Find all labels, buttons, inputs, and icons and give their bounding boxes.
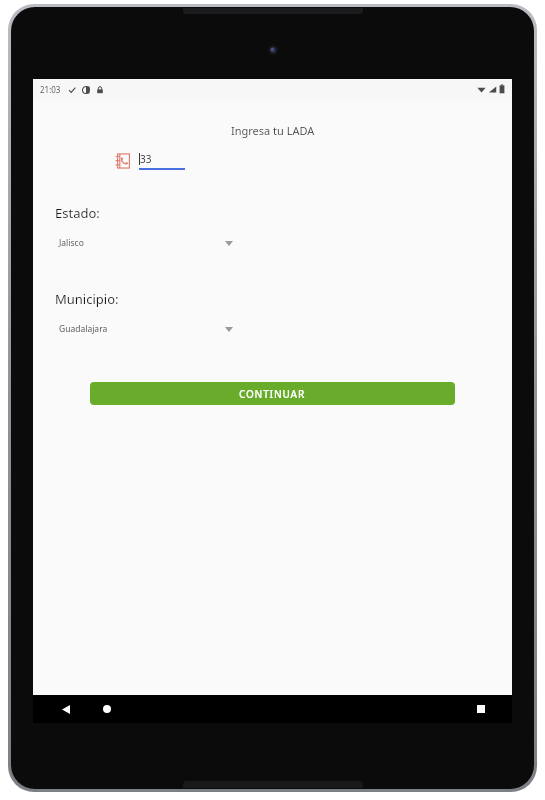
staticText: Municipio: xyxy=(55,290,119,308)
button[interactable]: Guadalajara xyxy=(59,320,233,338)
staticText: 33 xyxy=(140,152,152,166)
staticText: Guadalajara xyxy=(59,323,108,335)
button[interactable]: Recents xyxy=(469,697,493,721)
staticText: Estado: xyxy=(55,204,100,222)
staticText: Ingresa tu LADA xyxy=(231,123,315,138)
staticText: CONTINUAR xyxy=(239,387,306,401)
button[interactable]: Back xyxy=(54,697,78,721)
button[interactable]: Home xyxy=(95,697,119,721)
staticText: 21:03 xyxy=(40,84,61,95)
button[interactable]: Contactos xyxy=(115,153,131,169)
staticText: Jalisco xyxy=(59,237,84,249)
button[interactable]: Jalisco xyxy=(59,234,233,252)
button[interactable]: CONTINUAR xyxy=(90,382,455,405)
